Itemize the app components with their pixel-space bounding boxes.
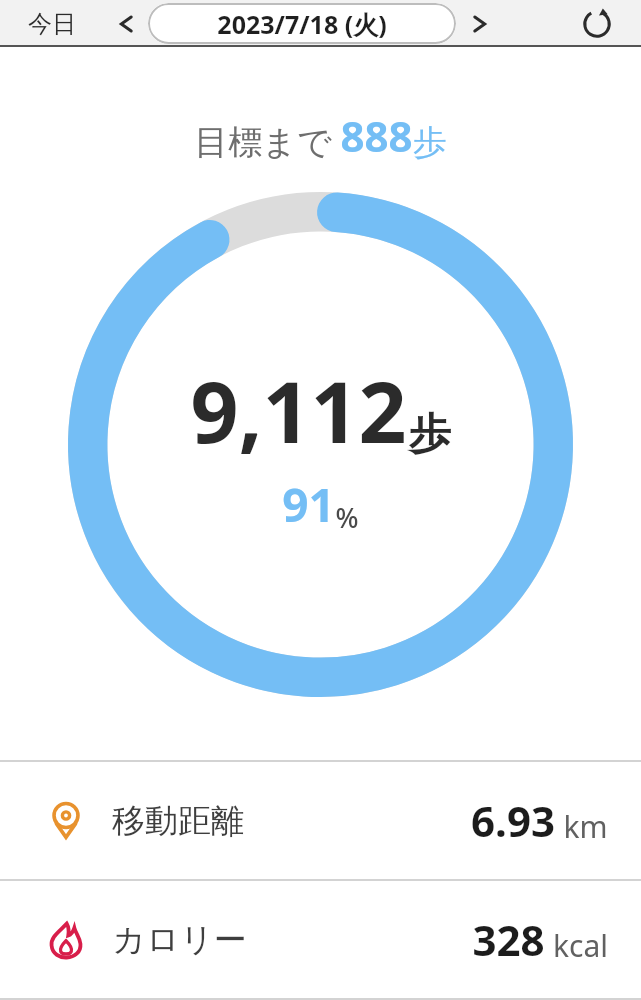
staticText: 91 bbox=[282, 473, 335, 536]
staticText: 歩 bbox=[409, 408, 451, 461]
button[interactable]: カロリー bbox=[0, 881, 641, 998]
staticText: 歩 bbox=[413, 121, 447, 164]
staticText: 6.93 bbox=[471, 792, 555, 849]
button[interactable]: 2023/7/18 (火) bbox=[148, 3, 456, 44]
staticText: 目標まで bbox=[194, 121, 332, 164]
staticText: 9,112 bbox=[190, 353, 407, 467]
staticText: km bbox=[563, 806, 608, 847]
staticText: 328 bbox=[472, 911, 545, 968]
button[interactable]: Next day bbox=[460, 4, 500, 44]
staticText: 今日 bbox=[28, 9, 76, 39]
button[interactable]: 移動距離 bbox=[0, 762, 641, 879]
staticText: % bbox=[335, 499, 359, 536]
staticText: 888 bbox=[340, 107, 413, 164]
staticText: 2023/7/18 (火) bbox=[217, 7, 387, 41]
button[interactable]: Previous day bbox=[106, 4, 146, 44]
button[interactable]: Refresh bbox=[573, 0, 621, 47]
staticText: 移動距離 bbox=[112, 800, 244, 842]
button[interactable]: 今日 bbox=[22, 3, 82, 45]
staticText: カロリー bbox=[112, 919, 247, 961]
staticText: kcal bbox=[553, 925, 608, 966]
